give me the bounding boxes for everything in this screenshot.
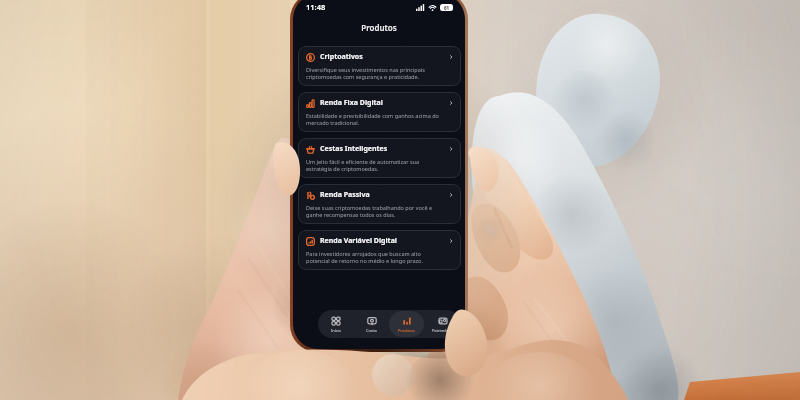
staticText: Cestas Inteligentes (320, 144, 388, 154)
staticText: Diversifique seus investimentos nas prin… (306, 66, 425, 80)
staticText: Para investidores arrojados que buscam a… (306, 250, 423, 264)
staticText: Início (331, 328, 341, 333)
staticText: Renda Variável Digital (320, 236, 397, 246)
staticText: Renda Passiva (320, 190, 370, 200)
button[interactable]: Patrimônio (425, 311, 460, 337)
button[interactable]: Produtos (389, 311, 424, 337)
button[interactable]: Cestas Inteligentes (298, 138, 461, 178)
staticText: 61 (444, 5, 450, 11)
staticText: Um jeito fácil e eficiente de automatiza… (306, 158, 420, 172)
button[interactable]: Renda Passiva (298, 184, 461, 224)
button[interactable]: Renda Fixa Digital (298, 92, 461, 132)
staticText: Produtos (398, 328, 415, 333)
button[interactable]: Renda Variável Digital (298, 230, 461, 270)
staticText: 11:48 (306, 2, 326, 12)
staticText: Criptoativos (320, 52, 363, 62)
staticText: Renda Fixa Digital (320, 98, 383, 108)
staticText: Produtos (293, 22, 465, 33)
button[interactable]: Conta (354, 311, 389, 337)
staticText: Estabilidade e previsibilidade com ganho… (306, 112, 439, 126)
staticText: Deixe suas criptomoedas trabalhando por … (306, 204, 433, 218)
button[interactable]: Início (318, 311, 353, 337)
button[interactable]: Criptoativos (298, 46, 461, 86)
staticText: Conta (366, 328, 377, 333)
staticText: Patrimônio (432, 328, 453, 333)
